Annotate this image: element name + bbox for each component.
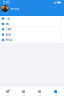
button[interactable]: Help (0, 37, 64, 42)
staticText: Me (55, 94, 57, 95)
button[interactable]: Find (32, 87, 48, 100)
staticText: Pay (5, 17, 9, 20)
staticText: Mates (22, 94, 26, 95)
button[interactable]: Mates (16, 87, 32, 100)
staticText: Chat (6, 94, 9, 95)
staticText: Help (5, 38, 12, 42)
button[interactable]: Fav (0, 21, 64, 26)
button[interactable]: Pay (0, 16, 64, 21)
button[interactable]: Chat (0, 87, 16, 100)
staticText: Stick (5, 33, 10, 36)
button[interactable]: Me (48, 87, 64, 100)
button[interactable]: Stick (0, 32, 64, 37)
staticText: Card (5, 27, 11, 31)
staticText: Emma (10, 7, 19, 10)
staticText: Fav (5, 22, 8, 26)
staticText: 9:41 (3, 1, 10, 4)
staticText: Find (38, 94, 41, 95)
button[interactable]: Card (0, 27, 64, 32)
